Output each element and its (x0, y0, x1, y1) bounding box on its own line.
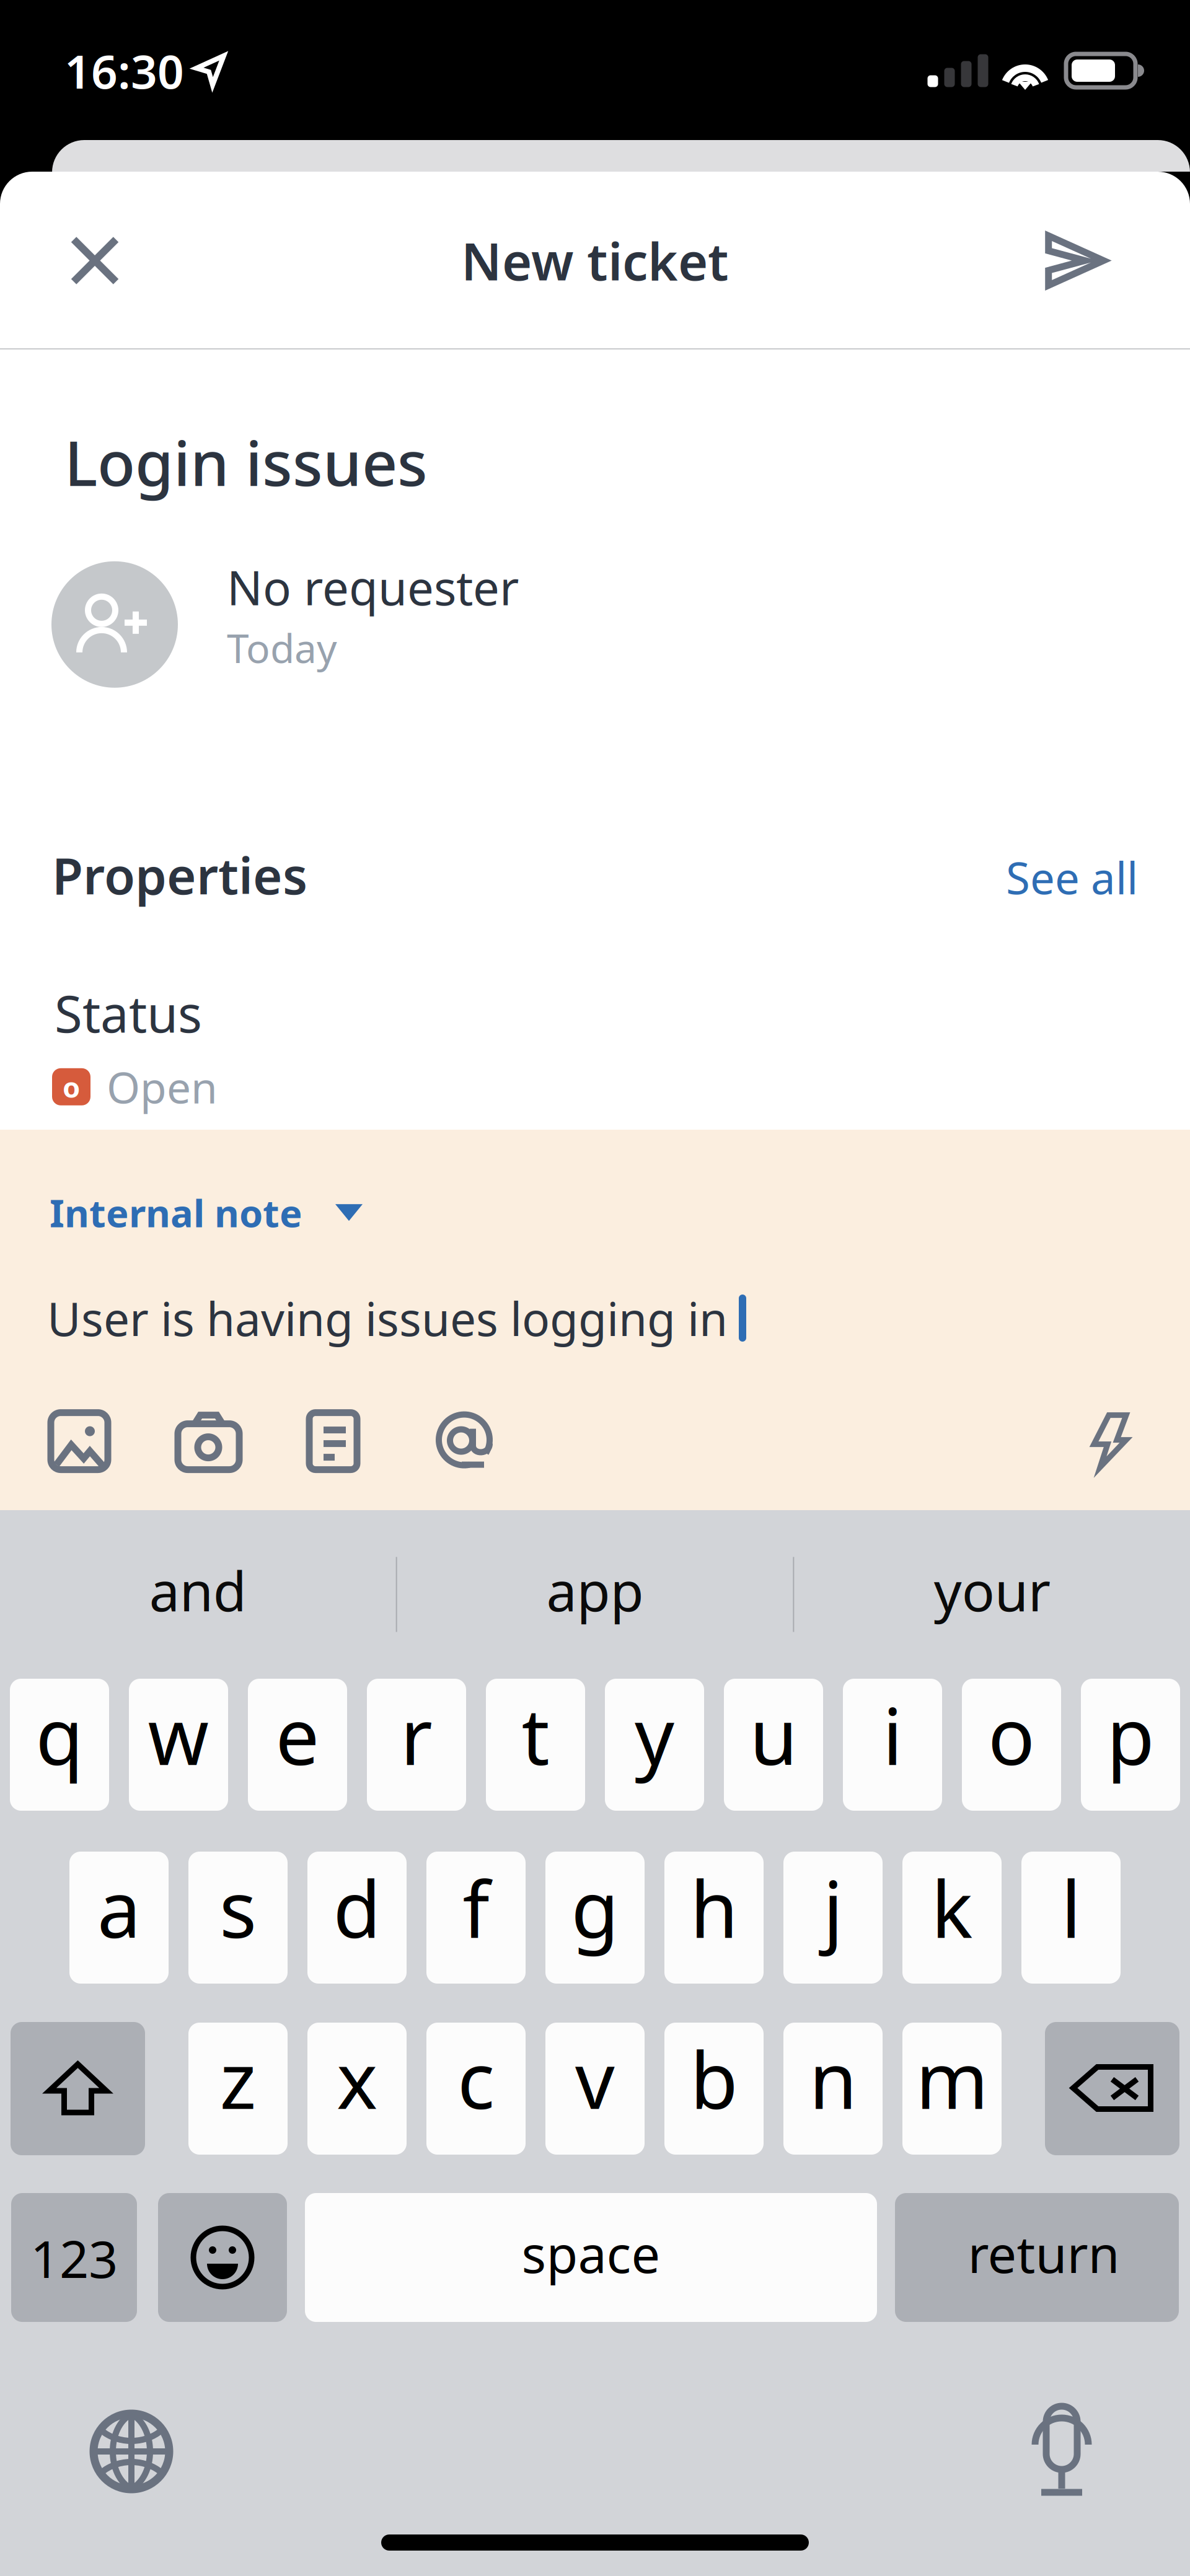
button[interactable]: b (664, 2023, 764, 2155)
staticText: 16:30 (64, 40, 184, 101)
button[interactable]: l (1021, 1852, 1121, 1984)
staticText: space (522, 2219, 660, 2287)
staticText: b (690, 2027, 738, 2130)
staticText: h (690, 1856, 738, 1959)
staticText: your (934, 1554, 1050, 1626)
staticText: Today (227, 621, 337, 674)
staticText: o (988, 1683, 1035, 1786)
button[interactable]: your (794, 1510, 1190, 1679)
button[interactable]: Dictate (1012, 2406, 1111, 2497)
staticText: Status (55, 980, 202, 1047)
staticText: m (916, 2027, 988, 2130)
button[interactable]: c (426, 2023, 526, 2155)
button[interactable]: Emoji (158, 2193, 287, 2322)
button[interactable]: h (664, 1852, 764, 1984)
button[interactable]: Macros (1090, 1411, 1130, 1471)
staticText: Open (107, 1058, 218, 1115)
staticText: x (337, 2027, 377, 2130)
button[interactable]: Next keyboard (82, 2406, 181, 2497)
staticText: p (1107, 1683, 1154, 1786)
button[interactable]: Mention (436, 1411, 493, 1471)
staticText: r (400, 1683, 433, 1786)
staticText: No requester (227, 556, 519, 618)
staticText: Properties (52, 841, 307, 908)
staticText: q (36, 1683, 83, 1786)
button[interactable]: t (486, 1679, 585, 1811)
staticText: z (220, 2027, 256, 2130)
button[interactable]: u (724, 1679, 823, 1811)
button[interactable]: Camera (178, 1411, 239, 1471)
button[interactable]: x (307, 2023, 407, 2155)
button[interactable]: e (248, 1679, 347, 1811)
staticText: v (575, 2027, 615, 2130)
button[interactable]: and (0, 1510, 396, 1679)
staticText: d (333, 1856, 381, 1959)
staticText: o (63, 1068, 80, 1105)
staticText: See all (1006, 848, 1138, 906)
button[interactable]: app (397, 1510, 793, 1679)
button[interactable]: q (10, 1679, 109, 1811)
button[interactable]: Add image (51, 1411, 108, 1471)
staticText: w (148, 1683, 209, 1786)
button[interactable]: o (962, 1679, 1061, 1811)
button[interactable]: j (783, 1852, 883, 1984)
button[interactable]: p (1081, 1679, 1180, 1811)
button[interactable]: k (902, 1852, 1002, 1984)
staticText: j (823, 1856, 843, 1959)
staticText: l (1061, 1856, 1081, 1959)
button[interactable]: Send (1033, 217, 1119, 304)
staticText: e (275, 1683, 320, 1786)
button[interactable]: 123 (11, 2193, 137, 2322)
button[interactable]: a (69, 1852, 169, 1984)
button[interactable]: y (605, 1679, 704, 1811)
staticText: g (571, 1856, 619, 1959)
staticText: User is having issues logging in (47, 1287, 728, 1349)
button[interactable]: i (843, 1679, 942, 1811)
button[interactable]: Internal note (50, 1187, 363, 1238)
staticText: c (457, 2027, 495, 2130)
staticText: and (149, 1554, 247, 1626)
staticText: k (931, 1856, 973, 1959)
button[interactable]: m (902, 2023, 1002, 2155)
button[interactable]: g (545, 1852, 645, 1984)
staticText: s (219, 1856, 257, 1959)
button[interactable]: d (307, 1852, 407, 1984)
button[interactable]: Delete (1045, 2022, 1179, 2155)
button[interactable]: w (129, 1679, 228, 1811)
button[interactable]: r (367, 1679, 466, 1811)
button[interactable]: f (426, 1852, 526, 1984)
staticText: app (546, 1554, 644, 1626)
button[interactable]: s (188, 1852, 288, 1984)
button[interactable]: See all (1006, 848, 1138, 906)
staticText: n (809, 2027, 857, 2130)
button[interactable]: Close (51, 217, 138, 304)
staticText: f (463, 1856, 489, 1959)
staticText: 123 (30, 2224, 118, 2292)
button[interactable]: n (783, 2023, 883, 2155)
staticText: New ticket (461, 227, 729, 295)
staticText: a (97, 1856, 141, 1959)
staticText: return (968, 2219, 1120, 2287)
staticText: y (635, 1683, 674, 1786)
button[interactable]: Shift (11, 2022, 145, 2155)
staticText: t (522, 1683, 549, 1786)
staticText: Internal note (50, 1187, 302, 1238)
button[interactable]: space (305, 2193, 877, 2322)
staticText: i (883, 1683, 902, 1786)
staticText: u (750, 1683, 797, 1786)
button[interactable]: Article (309, 1411, 357, 1471)
button[interactable]: v (545, 2023, 645, 2155)
button[interactable]: return (895, 2193, 1179, 2322)
button[interactable]: z (188, 2023, 288, 2155)
staticText: Login issues (64, 421, 428, 503)
